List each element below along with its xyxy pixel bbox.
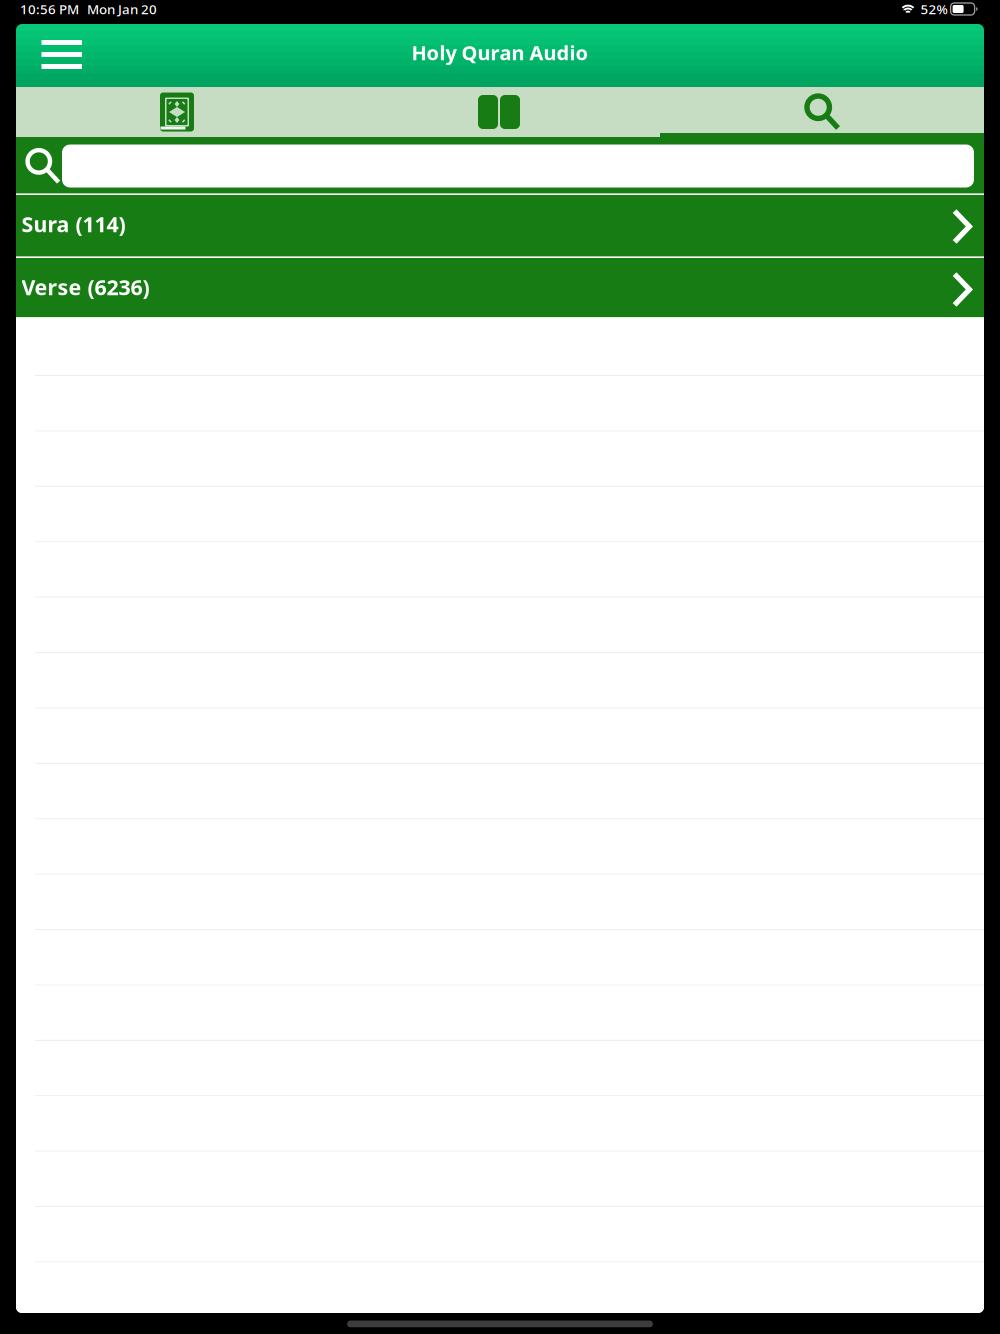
- button[interactable]: Result row: [16, 1261, 984, 1317]
- button[interactable]: Quran: [16, 87, 338, 137]
- staticText: Sura (114): [21, 210, 125, 238]
- button[interactable]: Menu: [16, 24, 146, 87]
- button[interactable]: Sura (114): [16, 195, 984, 258]
- button[interactable]: Search: [660, 87, 984, 137]
- staticText: Verse (6236): [21, 273, 149, 301]
- button[interactable]: Read: [338, 87, 660, 137]
- staticText: 52%: [920, 0, 947, 18]
- staticText: 10:56 PM: [20, 0, 79, 18]
- button[interactable]: Verse (6236): [16, 258, 984, 321]
- button[interactable]: Result row: [16, 317, 984, 375]
- staticText: Mon Jan 20: [87, 0, 157, 18]
- staticText: Holy Quran Audio: [411, 39, 588, 66]
